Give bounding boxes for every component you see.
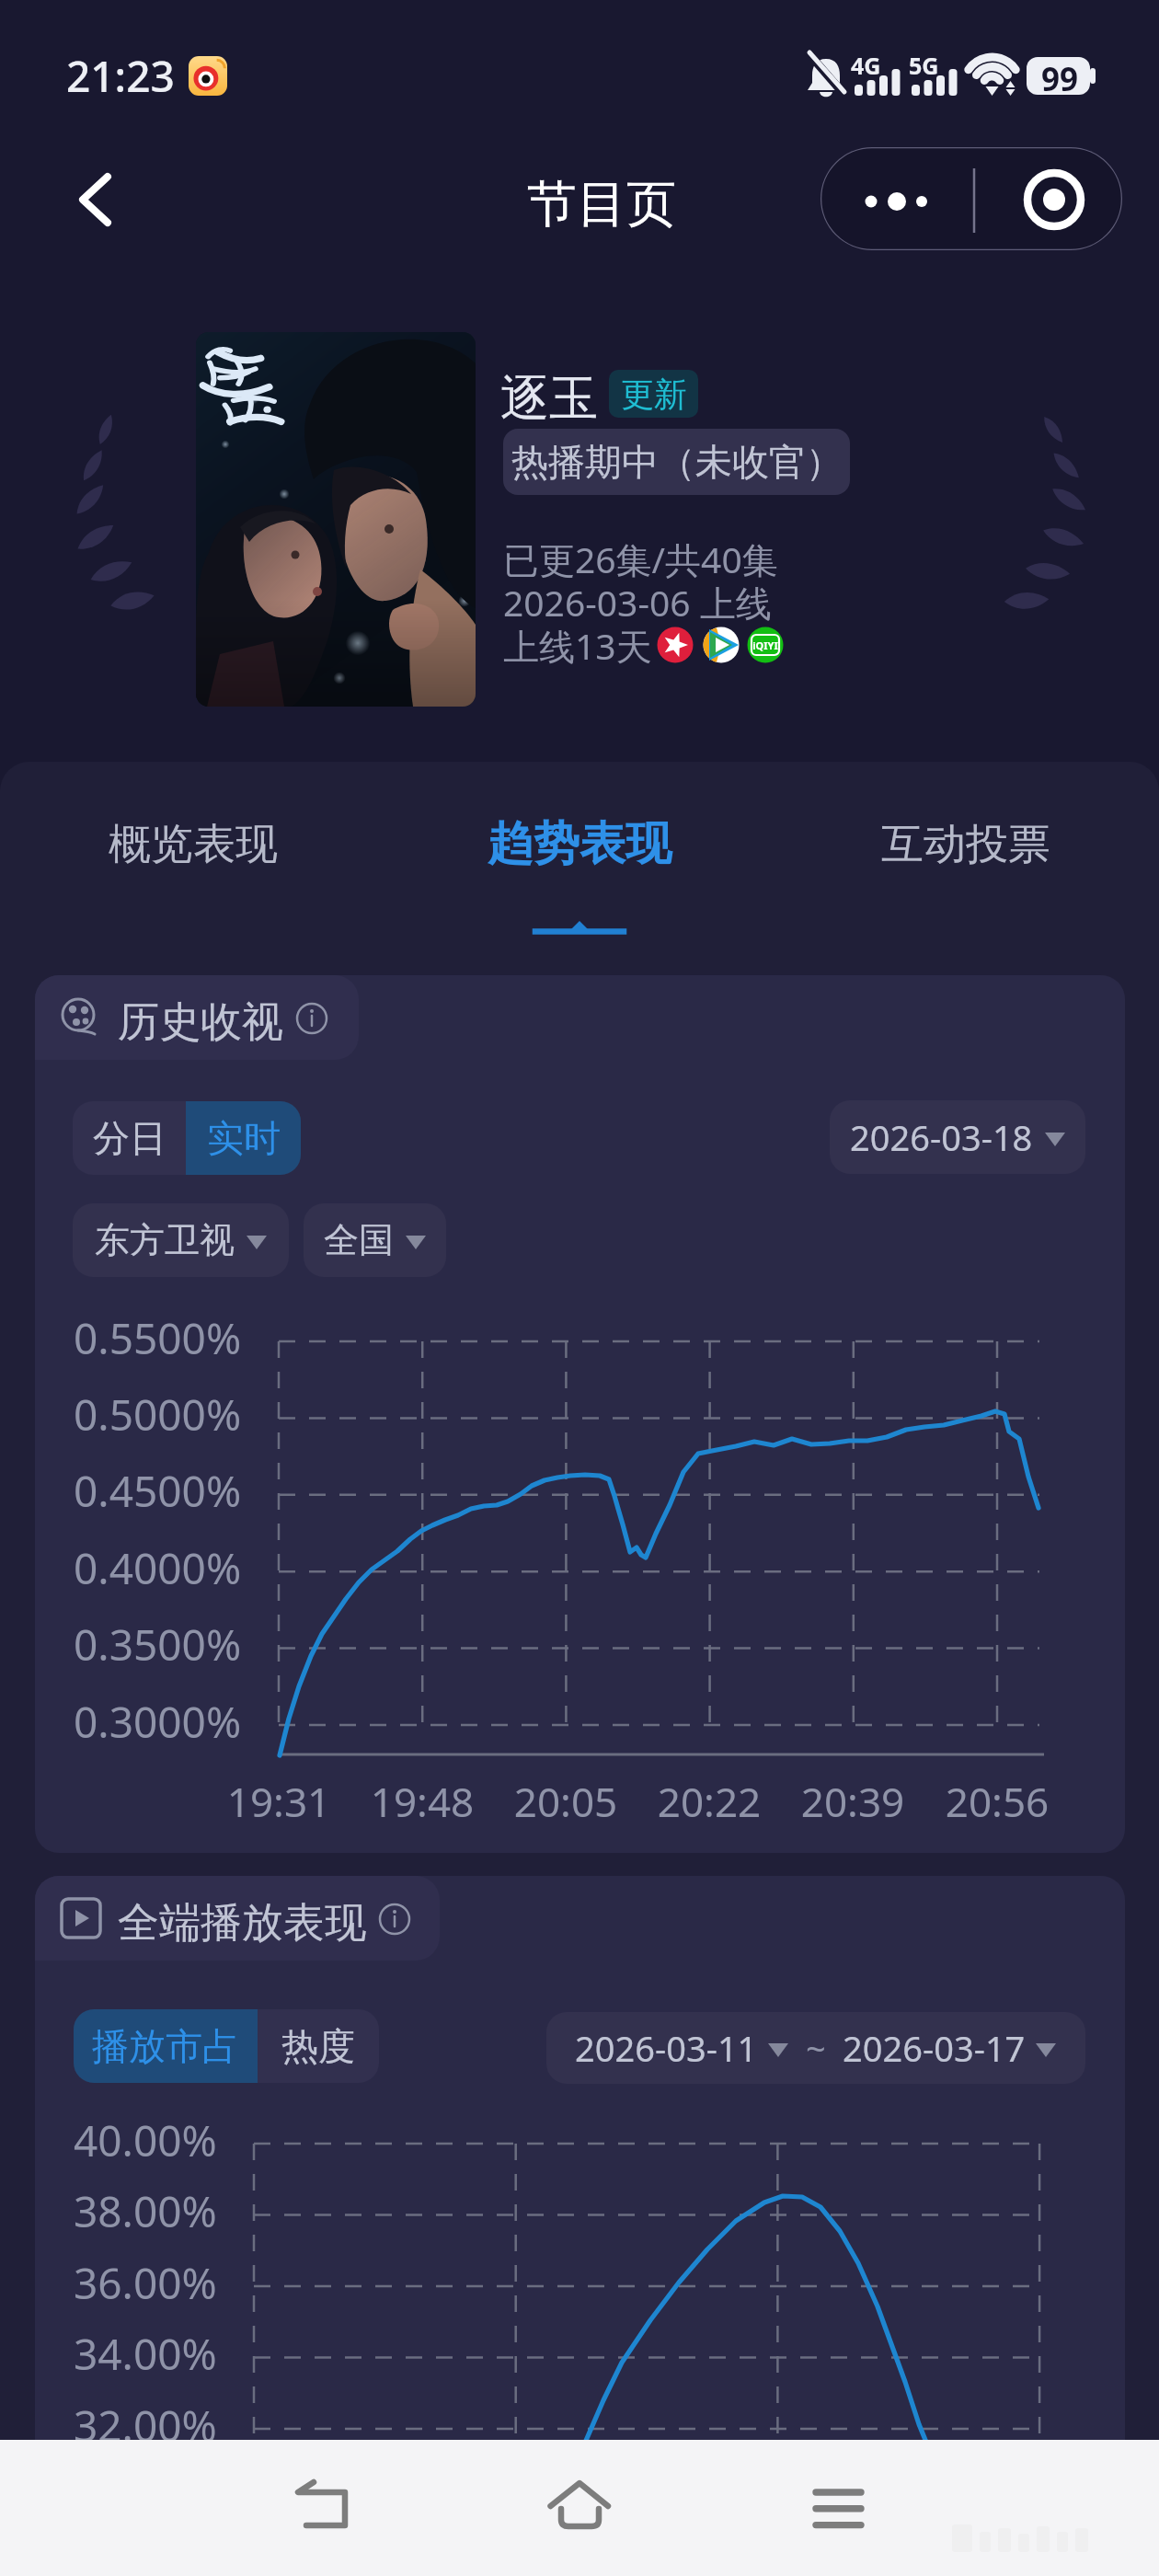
staticText: 40.00%	[74, 2111, 217, 2169]
staticText: 0.3000%	[74, 1693, 242, 1751]
staticText: 趋势表现	[488, 815, 671, 873]
staticText: 0.5500%	[74, 1309, 242, 1367]
button[interactable]: 热度	[258, 2009, 379, 2083]
staticText: 上线13天	[503, 621, 652, 670]
staticText: 4G	[851, 50, 881, 81]
staticText: 32.00%	[74, 2397, 217, 2455]
button[interactable]: Recent apps	[791, 2466, 883, 2548]
button[interactable]: Show poster	[196, 332, 476, 707]
staticText: 36.00%	[74, 2254, 217, 2312]
staticText: 热度	[281, 2023, 355, 2069]
staticText: 0.5000%	[74, 1386, 242, 1443]
staticText: 全国	[324, 1218, 394, 1262]
staticText: 99	[1041, 57, 1079, 101]
staticText: 全端播放表现	[118, 1897, 366, 1949]
staticText: 20:39	[761, 1774, 945, 2576]
button[interactable]: 趋势表现	[386, 791, 773, 897]
staticText: 东方卫视	[95, 1218, 235, 1262]
button[interactable]: 2026-03-11	[546, 2012, 1085, 2084]
staticText: 34.00%	[74, 2325, 217, 2383]
staticText: 5G	[909, 50, 939, 81]
button[interactable]: Back	[276, 2466, 377, 2548]
button[interactable]: Back	[51, 152, 138, 244]
button[interactable]: 2026-03-18	[830, 1100, 1085, 1174]
staticText: 0.4000%	[74, 1539, 242, 1597]
staticText: 0.4500%	[74, 1462, 242, 1520]
button[interactable]: 更新	[609, 370, 698, 418]
staticText: 节目页	[440, 173, 763, 236]
button[interactable]: 全国	[304, 1203, 446, 1277]
staticText: 0.3500%	[74, 1616, 242, 1673]
staticText: 概览表现	[109, 818, 278, 871]
button[interactable]: 播放市占	[74, 2009, 258, 2083]
button[interactable]: 实时	[186, 1101, 301, 1175]
button[interactable]: 全端播放表现	[35, 1876, 440, 1961]
staticText: 逐玉	[500, 368, 598, 430]
staticText: 历史收视	[118, 996, 283, 1049]
staticText: 播放市占	[92, 2023, 239, 2069]
staticText: 已更26集/共40集	[503, 535, 778, 583]
staticText: ~	[806, 2024, 826, 2072]
button[interactable]: Home	[534, 2466, 625, 2548]
button[interactable]: 概览表现	[0, 791, 386, 897]
button[interactable]: 分日	[73, 1101, 186, 1175]
staticText: 热播期中（未收官）	[511, 439, 843, 485]
staticText: 分日	[93, 1115, 166, 1161]
button[interactable]: 东方卫视	[73, 1203, 289, 1277]
staticText: 20:05	[474, 1774, 658, 2576]
button[interactable]: 互动投票	[773, 791, 1159, 897]
staticText: 2026-03-18	[850, 1113, 1033, 1161]
staticText: 互动投票	[881, 818, 1050, 871]
staticText: 2026-03-06 上线	[503, 578, 772, 627]
button[interactable]: 历史收视	[35, 975, 359, 1060]
staticText: 19:31	[187, 1774, 371, 2576]
staticText: 20:56	[905, 1774, 1089, 2576]
button[interactable]: More options	[820, 147, 1122, 250]
staticText: 38.00%	[74, 2182, 217, 2240]
staticText: iQIYI	[747, 638, 784, 652]
staticText: 21:23	[66, 47, 175, 105]
staticText: 2026-03-17	[843, 2024, 1026, 2072]
staticText: 2026-03-11	[575, 2024, 758, 2072]
button[interactable]: 热播期中（未收官）	[503, 429, 850, 495]
staticText: 19:48	[330, 1774, 514, 2576]
staticText: 更新	[621, 374, 687, 415]
staticText: 实时	[207, 1115, 281, 1161]
staticText: 20:22	[617, 1774, 801, 2576]
